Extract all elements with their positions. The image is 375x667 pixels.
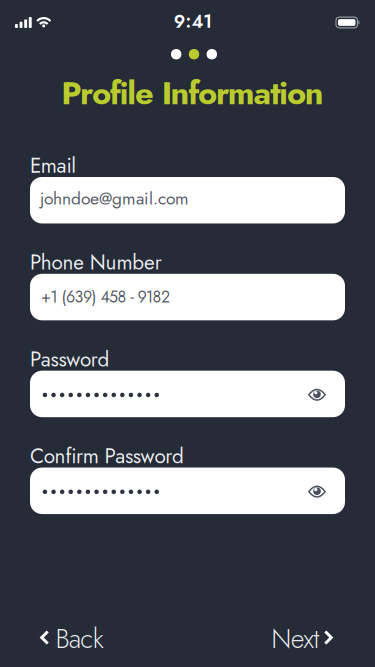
staticText: +1 (639) 458 - 9182 — [41, 285, 170, 308]
staticText: Phone Number — [30, 247, 162, 277]
button[interactable]: Password — [30, 371, 345, 417]
button[interactable]: Back — [40, 619, 104, 658]
staticText: 9:41 — [174, 8, 212, 34]
staticText: Confirm Password — [30, 441, 184, 471]
staticText: Profile Information — [61, 69, 324, 117]
button[interactable]: Confirm Password — [30, 468, 345, 514]
button[interactable]: Show password — [303, 383, 331, 405]
staticText: Next — [271, 619, 320, 658]
button[interactable]: Show confirm password — [303, 480, 331, 502]
button[interactable]: Email — [30, 177, 345, 223]
staticText: Password — [30, 344, 110, 374]
staticText: Email — [30, 151, 76, 180]
staticText: Back — [55, 619, 104, 658]
button[interactable]: Phone Number — [30, 274, 345, 320]
staticText: johndoe@gmail.com — [40, 186, 189, 211]
button[interactable]: Next — [271, 619, 333, 658]
